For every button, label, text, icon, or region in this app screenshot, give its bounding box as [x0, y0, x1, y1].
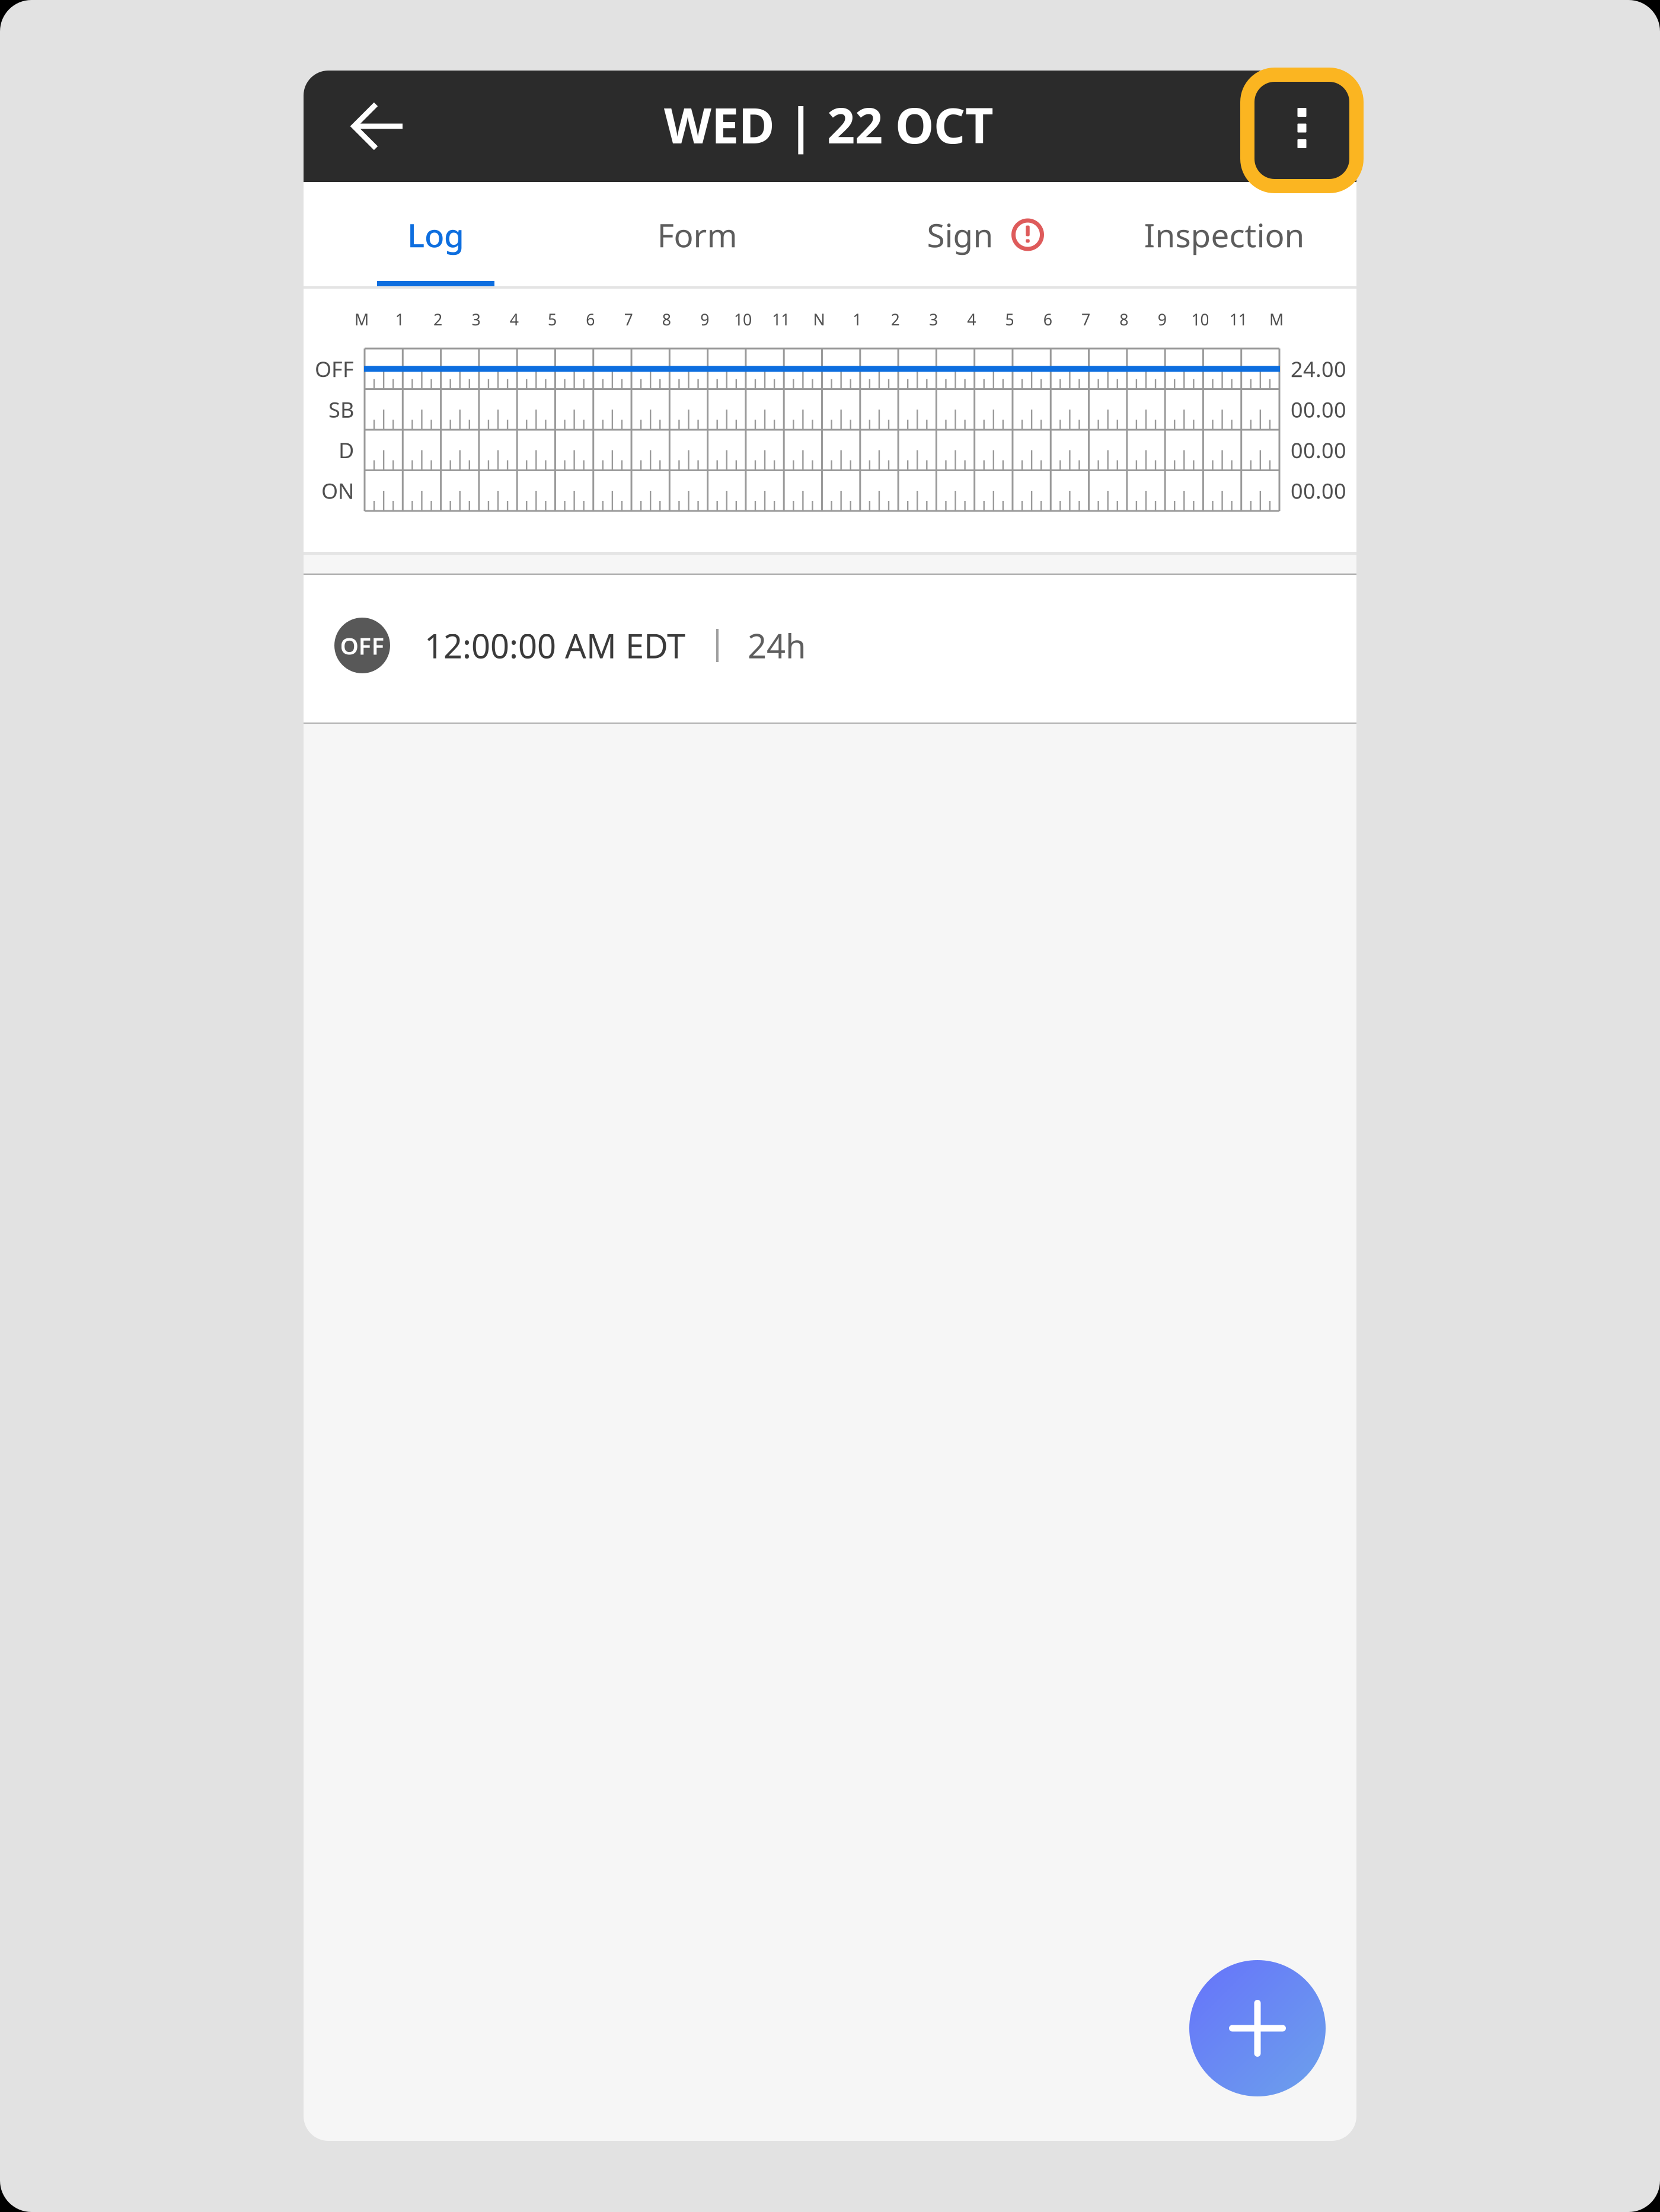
staticText: WED | 22 OCT: [664, 92, 994, 157]
staticText: 00.00: [1291, 395, 1346, 424]
button[interactable]: Add log entry: [1189, 1960, 1326, 2096]
staticText: 11: [1229, 309, 1247, 330]
staticText: 3: [472, 309, 480, 330]
staticText: Sign: [927, 213, 993, 256]
staticText: Log: [407, 213, 464, 256]
button[interactable]: OFF: [304, 575, 1356, 724]
staticText: 4: [510, 309, 519, 330]
staticText: 7: [1081, 309, 1090, 330]
button[interactable]: Form: [573, 190, 822, 280]
staticText: 7: [624, 309, 633, 330]
staticText: 9: [1158, 309, 1167, 330]
staticText: Form: [657, 213, 737, 256]
button[interactable]: More options: [1247, 72, 1357, 184]
staticText: OFF: [315, 355, 354, 383]
staticText: 24.00: [1291, 355, 1346, 383]
staticText: 6: [586, 309, 595, 330]
staticText: 1: [395, 309, 404, 330]
staticText: 6: [1043, 309, 1052, 330]
staticText: ON: [321, 476, 354, 505]
staticText: 2: [433, 309, 442, 330]
staticText: 9: [700, 309, 709, 330]
staticText: 1: [853, 309, 862, 330]
staticText: 12:00:00 AM EDT: [424, 623, 685, 668]
staticText: 5: [548, 309, 557, 330]
button[interactable]: Inspection: [1091, 190, 1358, 280]
staticText: 24h: [748, 623, 806, 668]
staticText: 8: [662, 309, 671, 330]
button[interactable]: Log: [311, 190, 560, 280]
staticText: 4: [967, 309, 976, 330]
staticText: N: [813, 309, 825, 330]
staticText: 11: [772, 309, 790, 330]
staticText: 00.00: [1291, 476, 1346, 505]
button[interactable]: Back: [325, 71, 432, 182]
staticText: 3: [929, 309, 938, 330]
staticText: 10: [1191, 309, 1209, 330]
staticText: 00.00: [1291, 436, 1346, 464]
staticText: M: [1269, 309, 1284, 330]
button[interactable]: Sign: [861, 190, 1110, 280]
staticText: 5: [1005, 309, 1014, 330]
staticText: D: [339, 436, 354, 464]
staticText: Inspection: [1144, 213, 1305, 256]
staticText: SB: [328, 395, 354, 424]
staticText: OFF: [340, 630, 384, 661]
staticText: 10: [734, 309, 752, 330]
staticText: 2: [891, 309, 900, 330]
staticText: 8: [1119, 309, 1128, 330]
staticText: M: [355, 309, 369, 330]
